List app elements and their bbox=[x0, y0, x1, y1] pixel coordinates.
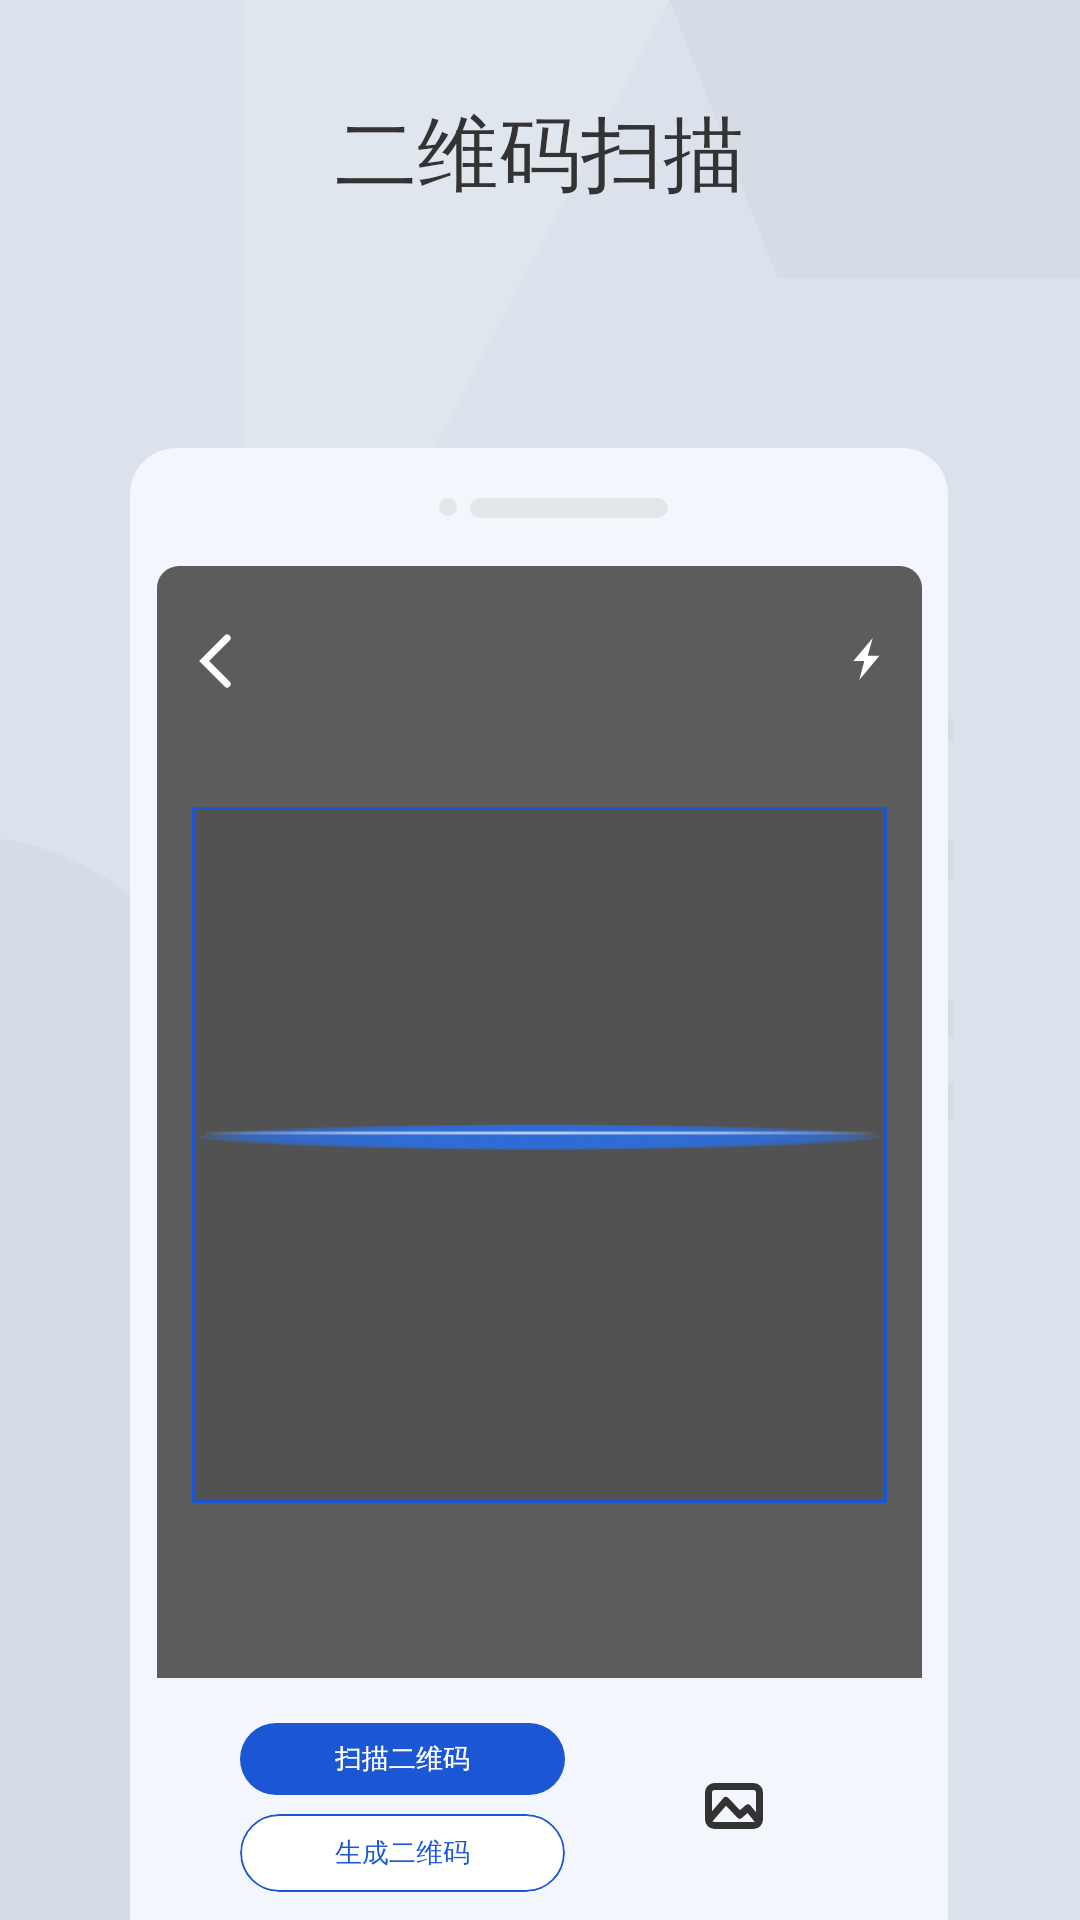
button[interactable]: 生成二维码 bbox=[240, 1814, 565, 1892]
button[interactable]: Pick image bbox=[686, 1758, 782, 1854]
staticText: 扫描二维码 bbox=[335, 1742, 470, 1776]
button[interactable]: 扫描二维码 bbox=[240, 1723, 565, 1795]
staticText: 生成二维码 bbox=[335, 1836, 470, 1870]
staticText: 二维码扫描 bbox=[0, 104, 1080, 207]
button[interactable]: Flash bbox=[826, 619, 906, 699]
button[interactable]: Back bbox=[177, 621, 257, 701]
